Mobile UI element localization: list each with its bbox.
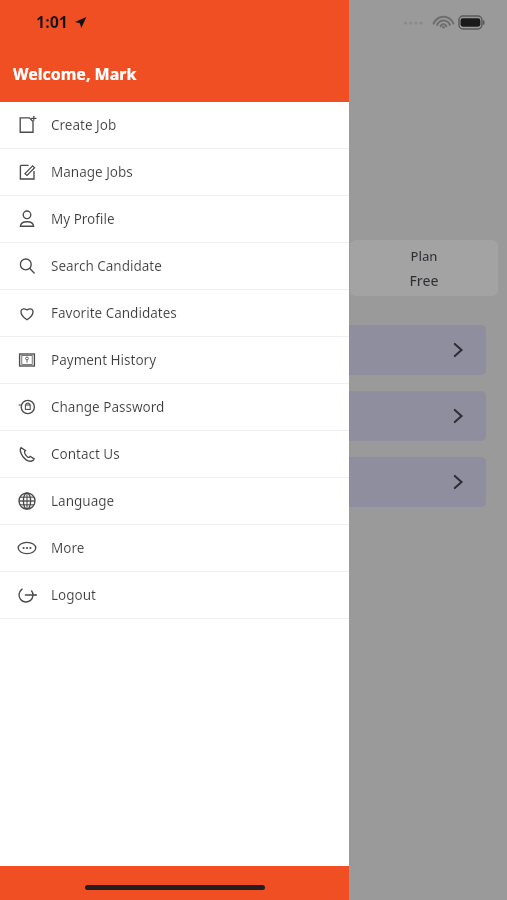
- button[interactable]: Manage Jobs: [0, 149, 349, 195]
- staticText: Favorite Candidates: [51, 304, 177, 322]
- staticText: Contact Us: [51, 445, 120, 463]
- staticText: Create Job: [51, 116, 117, 134]
- button[interactable]: My Profile: [0, 196, 349, 242]
- staticText: Logout: [51, 586, 96, 604]
- staticText: Change Password: [51, 398, 165, 416]
- staticText: Search Candidate: [51, 257, 162, 275]
- staticText: Language: [51, 492, 115, 510]
- button[interactable]: Plan: [350, 240, 498, 296]
- staticText: Payment History: [51, 351, 157, 369]
- button[interactable]: Search Candidate: [0, 243, 349, 289]
- staticText: Plan: [410, 247, 438, 265]
- button[interactable]: Change Password: [0, 384, 349, 430]
- button[interactable]: Payment History: [0, 337, 349, 383]
- button[interactable]: Open item: [330, 457, 486, 507]
- button[interactable]: Create Job: [0, 102, 349, 148]
- button[interactable]: Favorite Candidates: [0, 290, 349, 336]
- button[interactable]: Logout: [0, 572, 349, 618]
- button[interactable]: More: [0, 525, 349, 571]
- button[interactable]: Language: [0, 478, 349, 524]
- staticText: 1:01: [36, 11, 68, 33]
- button[interactable]: Contact Us: [0, 431, 349, 477]
- staticText: My Profile: [51, 210, 115, 228]
- staticText: Welcome, Mark: [13, 63, 137, 85]
- button[interactable]: Open item: [330, 325, 486, 375]
- staticText: Free: [409, 271, 439, 290]
- staticText: More: [51, 539, 85, 557]
- button[interactable]: Open item: [330, 391, 486, 441]
- staticText: Manage Jobs: [51, 163, 133, 181]
